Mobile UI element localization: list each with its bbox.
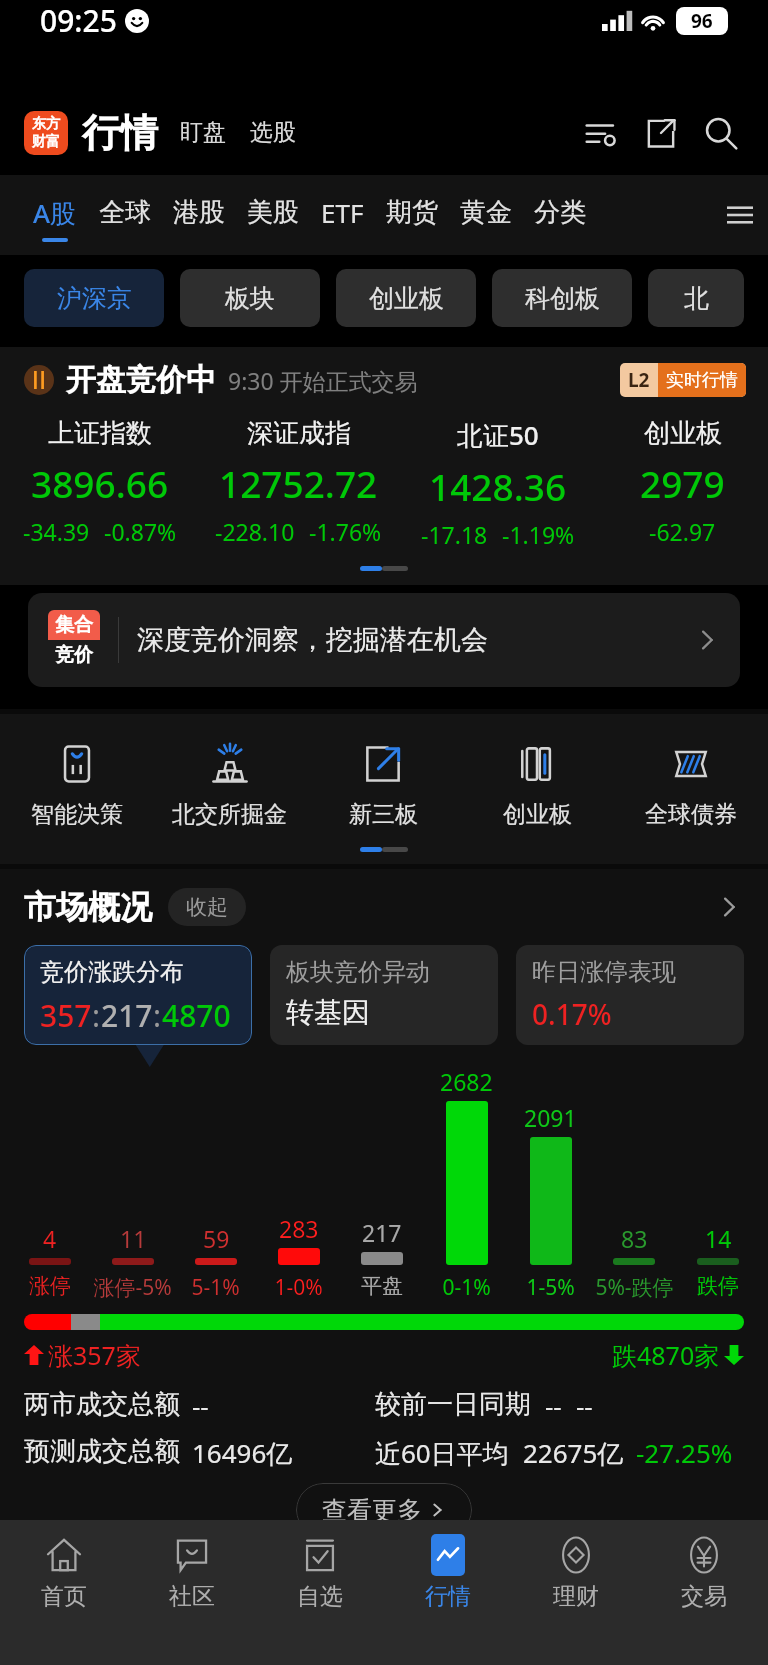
staticText: 行情 bbox=[82, 109, 158, 157]
staticText: 查看更多 bbox=[322, 1495, 422, 1526]
staticText: 社区 bbox=[169, 1582, 215, 1611]
staticText: 14 bbox=[705, 1223, 732, 1254]
button[interactable]: A股 bbox=[22, 175, 88, 255]
staticText: 创业板 bbox=[503, 800, 572, 829]
button[interactable]: Share bbox=[638, 110, 684, 156]
staticText: -27.25% bbox=[636, 1435, 733, 1470]
button[interactable]: 港股 bbox=[162, 175, 236, 255]
staticText: 市场概况 bbox=[24, 887, 152, 927]
staticText: 北交所掘金 bbox=[172, 800, 287, 829]
staticText: 创业板 bbox=[369, 283, 444, 314]
staticText: 83 bbox=[621, 1223, 648, 1254]
button[interactable]: 全球 bbox=[88, 175, 162, 255]
button[interactable]: Search bbox=[698, 110, 744, 156]
staticText: 收起 bbox=[186, 894, 228, 920]
staticText: -34.39 bbox=[23, 516, 90, 547]
button[interactable]: 创业板 bbox=[336, 269, 476, 327]
staticText: L2 bbox=[628, 367, 650, 393]
button[interactable]: 深证成指 bbox=[199, 417, 398, 547]
staticText: 首页 bbox=[41, 1582, 87, 1611]
button[interactable]: 收起 bbox=[168, 888, 246, 926]
button[interactable]: 竞价涨跌分布 bbox=[24, 945, 252, 1045]
staticText: 实时行情 bbox=[666, 369, 738, 392]
button[interactable]: L2 bbox=[620, 363, 746, 397]
button[interactable]: More market overview bbox=[712, 890, 746, 924]
staticText: 转基因 bbox=[286, 995, 370, 1030]
staticText: 两市成交总额 bbox=[24, 1388, 180, 1421]
button[interactable]: 分类 bbox=[523, 175, 597, 255]
staticText: 12752.72 bbox=[219, 458, 378, 508]
staticText: 96 bbox=[691, 8, 713, 34]
button[interactable]: 昨日涨停表现 bbox=[516, 945, 744, 1045]
staticText: 59 bbox=[203, 1223, 230, 1254]
button[interactable]: 北交所掘金 bbox=[153, 734, 306, 833]
button[interactable]: 科创板 bbox=[492, 269, 632, 327]
button[interactable]: More tabs bbox=[720, 195, 760, 235]
staticText: 财富 bbox=[32, 133, 60, 151]
staticText: 开盘竞价中 bbox=[66, 361, 216, 399]
button[interactable]: 板块 bbox=[180, 269, 320, 327]
button[interactable]: 创业板 bbox=[597, 417, 768, 547]
staticText: 全球 bbox=[99, 196, 151, 229]
staticText: 科创板 bbox=[525, 283, 600, 314]
staticText: 5%-跌停 bbox=[595, 1273, 674, 1302]
button[interactable]: 全球债券 bbox=[614, 734, 768, 833]
button[interactable]: 板块竞价异动 bbox=[270, 945, 498, 1045]
staticText: 深证成指 bbox=[247, 417, 351, 450]
button[interactable]: 社区 bbox=[128, 1532, 256, 1613]
staticText: 9:30 开始正式交易 bbox=[228, 365, 418, 396]
staticText: 2682 bbox=[440, 1066, 493, 1097]
button[interactable]: 美股 bbox=[236, 175, 310, 255]
button[interactable]: 集合 bbox=[28, 593, 740, 687]
button[interactable]: 查看更多 bbox=[296, 1483, 472, 1537]
staticText: 357 bbox=[40, 995, 92, 1036]
button[interactable]: 自选 bbox=[256, 1532, 384, 1613]
staticText: -228.10 bbox=[215, 516, 295, 547]
staticText: 217 bbox=[101, 995, 153, 1036]
staticText: 3896.66 bbox=[31, 458, 169, 508]
staticText: 涨停-5% bbox=[93, 1273, 172, 1302]
staticText: 美股 bbox=[247, 196, 299, 229]
staticText: 22675亿 bbox=[523, 1435, 624, 1471]
staticText: 09:25 bbox=[40, 0, 117, 41]
button[interactable]: 交易 bbox=[640, 1532, 768, 1613]
staticText: 交易 bbox=[681, 1582, 727, 1611]
button[interactable]: 上证指数 bbox=[0, 417, 199, 547]
staticText: 昨日涨停表现 bbox=[532, 957, 676, 987]
staticText: A股 bbox=[33, 195, 77, 231]
staticText: 跌停 bbox=[697, 1273, 739, 1299]
button[interactable]: 创业板 bbox=[460, 734, 614, 833]
staticText: 东方 bbox=[32, 115, 60, 133]
button[interactable]: 盯盘 bbox=[180, 118, 226, 147]
staticText: 11 bbox=[120, 1223, 147, 1254]
staticText: 黄金 bbox=[460, 196, 512, 229]
button[interactable]: 行情 bbox=[384, 1532, 512, 1613]
staticText: 5-1% bbox=[191, 1273, 240, 1302]
button[interactable]: ETF bbox=[310, 175, 375, 255]
staticText: 全球债券 bbox=[645, 800, 737, 829]
staticText: 期货 bbox=[386, 196, 438, 229]
button[interactable]: 理财 bbox=[512, 1532, 640, 1613]
button[interactable]: 沪深京 bbox=[24, 269, 164, 327]
button[interactable]: Filter settings bbox=[578, 110, 624, 156]
staticText: 283 bbox=[279, 1213, 319, 1244]
button[interactable]: 北 bbox=[648, 269, 744, 327]
button[interactable]: 北证50 bbox=[398, 417, 597, 550]
staticText: 北 bbox=[684, 283, 709, 314]
button[interactable]: 期货 bbox=[375, 175, 449, 255]
staticText: 平盘 bbox=[361, 1273, 403, 1299]
staticText: 智能决策 bbox=[31, 800, 123, 829]
staticText: 板块 bbox=[225, 283, 275, 314]
staticText: 涨停 bbox=[29, 1273, 71, 1299]
button[interactable]: 首页 bbox=[0, 1532, 128, 1613]
staticText: 深度竞价洞察，挖掘潜在机会 bbox=[137, 623, 488, 657]
staticText: -- bbox=[192, 1388, 209, 1423]
button[interactable]: 新三板 bbox=[306, 734, 460, 833]
button[interactable]: 选股 bbox=[250, 118, 296, 147]
staticText: 沪深京 bbox=[57, 283, 132, 314]
button[interactable]: 黄金 bbox=[449, 175, 523, 255]
button[interactable]: 智能决策 bbox=[0, 734, 153, 833]
staticText: 1428.36 bbox=[429, 461, 567, 511]
staticText: 0-1% bbox=[442, 1273, 491, 1302]
staticText: 预测成交总额 bbox=[24, 1435, 180, 1468]
